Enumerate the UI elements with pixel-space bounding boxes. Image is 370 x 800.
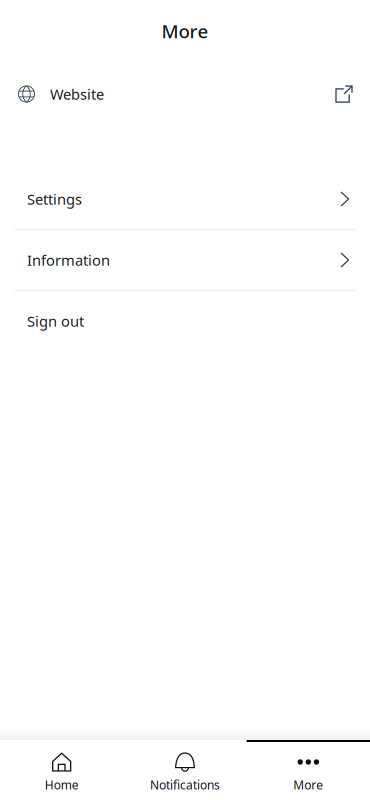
staticText: Settings (27, 189, 82, 209)
staticText: More (293, 777, 323, 793)
button[interactable]: Website (0, 71, 370, 117)
button[interactable]: Sign out (0, 291, 370, 351)
staticText: Information (27, 250, 110, 270)
button[interactable]: Home (0, 740, 123, 800)
button[interactable]: Settings (0, 169, 370, 229)
staticText: Notifications (150, 777, 220, 793)
staticText: More (161, 19, 208, 43)
staticText: Sign out (27, 311, 84, 331)
button[interactable]: Information (0, 230, 370, 290)
button[interactable]: Notifications (123, 740, 247, 800)
staticText: Home (45, 777, 79, 793)
staticText: Website (50, 84, 104, 104)
button[interactable]: More (247, 740, 370, 800)
